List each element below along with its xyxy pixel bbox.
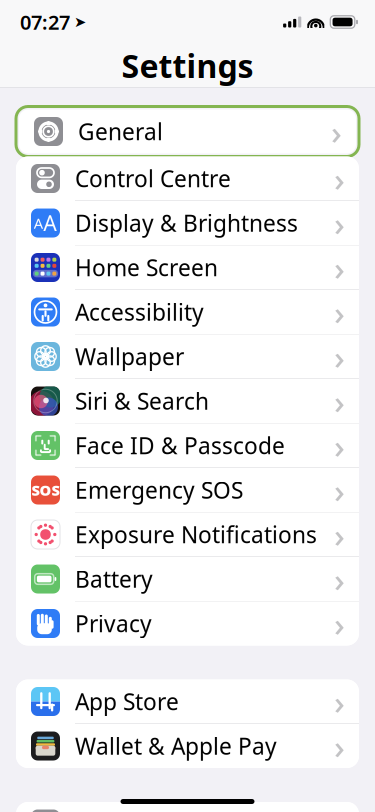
staticText: Wallet & Apple Pay <box>75 731 277 761</box>
button[interactable]: Passwords <box>16 802 359 812</box>
button[interactable]: App Store <box>16 679 359 724</box>
button[interactable]: SOS <box>16 468 359 512</box>
staticText: Battery <box>75 564 153 594</box>
staticText: App Store <box>75 686 179 716</box>
staticText: › <box>334 468 345 512</box>
staticText: 07:27 <box>20 9 70 35</box>
staticText: SOS <box>31 480 59 500</box>
staticText: Emergency SOS <box>75 475 243 505</box>
staticText: General <box>78 116 163 146</box>
staticText: Home Screen <box>75 252 218 282</box>
button[interactable]: Battery <box>16 557 359 601</box>
button[interactable]: General <box>19 109 356 153</box>
button[interactable]: A <box>16 201 359 245</box>
button[interactable]: Wallpaper <box>16 334 359 379</box>
staticText: › <box>334 724 345 768</box>
staticText: › <box>334 557 345 601</box>
button[interactable]: Control Centre <box>16 156 359 201</box>
staticText: Privacy <box>75 608 152 638</box>
button[interactable]: Siri & Search <box>16 379 359 423</box>
button[interactable]: Exposure Notifications <box>16 512 359 557</box>
staticText: › <box>334 423 345 468</box>
staticText: A <box>34 213 43 233</box>
button[interactable]: Face ID & Passcode <box>16 423 359 468</box>
staticText: Settings <box>121 44 253 87</box>
staticText: › <box>334 201 345 245</box>
button[interactable]: Wallet & Apple Pay <box>16 724 359 768</box>
staticText: › <box>334 334 345 379</box>
staticText: › <box>334 601 345 646</box>
button[interactable]: Accessibility <box>16 290 359 334</box>
button[interactable]: Privacy <box>16 601 359 645</box>
staticText: › <box>334 679 345 724</box>
staticText: › <box>334 156 345 201</box>
staticText: › <box>334 245 345 290</box>
staticText: ➤ <box>74 14 86 30</box>
staticText: › <box>334 379 345 423</box>
staticText: Face ID & Passcode <box>75 430 285 460</box>
staticText: A <box>43 209 57 237</box>
staticText: Exposure Notifications <box>75 519 317 549</box>
staticText: › <box>331 109 342 154</box>
staticText: Display & Brightness <box>75 208 298 238</box>
staticText: Control Centre <box>75 163 231 193</box>
button[interactable]: Home Screen <box>16 245 359 290</box>
staticText: › <box>334 290 345 334</box>
staticText: Siri & Search <box>75 386 209 416</box>
staticText: Wallpaper <box>75 341 184 371</box>
staticText: › <box>334 512 345 557</box>
staticText: Accessibility <box>75 297 204 327</box>
